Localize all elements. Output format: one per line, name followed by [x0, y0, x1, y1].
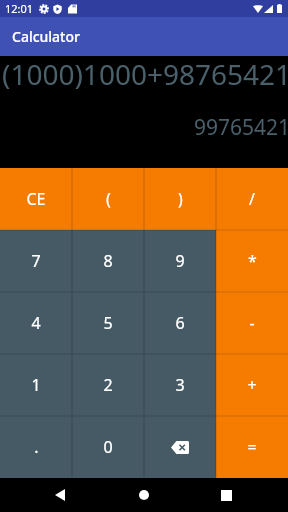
staticText: 99765421 — [194, 113, 288, 142]
staticText: = — [247, 436, 257, 458]
button[interactable]: - — [216, 292, 288, 354]
staticText: - — [249, 312, 255, 334]
button[interactable]: ) — [144, 168, 216, 230]
button[interactable]: 5 — [72, 292, 144, 354]
staticText: 9 — [175, 250, 185, 272]
staticText: 0 — [103, 436, 113, 458]
staticText: / — [249, 188, 255, 210]
button[interactable]: 2 — [72, 354, 144, 416]
button[interactable]: 7 — [0, 230, 72, 292]
button[interactable]: Recent apps — [208, 478, 244, 512]
button[interactable]: 3 — [144, 354, 216, 416]
button[interactable]: CE — [0, 168, 72, 230]
staticText: 5 — [103, 312, 113, 334]
staticText: 7 — [31, 250, 41, 272]
button[interactable]: Backspace — [144, 416, 216, 478]
button[interactable]: 8 — [72, 230, 144, 292]
button[interactable]: 6 — [144, 292, 216, 354]
button[interactable]: ( — [72, 168, 144, 230]
staticText: + — [247, 374, 257, 396]
staticText: 12:01 — [5, 1, 34, 16]
staticText: 1 — [31, 374, 41, 396]
staticText: 8 — [103, 250, 113, 272]
staticText: 2 — [103, 374, 113, 396]
staticText: ( — [106, 188, 111, 210]
button[interactable]: 1 — [0, 354, 72, 416]
staticText: ) — [178, 188, 183, 210]
staticText: . — [34, 436, 39, 458]
button[interactable]: + — [216, 354, 288, 416]
staticText: CE — [26, 188, 46, 210]
staticText: Calculator — [12, 27, 80, 46]
staticText: 6 — [175, 312, 185, 334]
button[interactable]: / — [216, 168, 288, 230]
button[interactable]: Back — [42, 478, 78, 512]
staticText: (1000)1000+98765421 — [2, 55, 288, 93]
button[interactable]: * — [216, 230, 288, 292]
staticText: * — [248, 250, 257, 272]
staticText: 4 — [31, 312, 41, 334]
button[interactable]: Home — [126, 478, 162, 512]
button[interactable]: = — [216, 416, 288, 478]
button[interactable]: . — [0, 416, 72, 478]
button[interactable]: 9 — [144, 230, 216, 292]
button[interactable]: 4 — [0, 292, 72, 354]
staticText: 3 — [175, 374, 185, 396]
button[interactable]: 0 — [72, 416, 144, 478]
